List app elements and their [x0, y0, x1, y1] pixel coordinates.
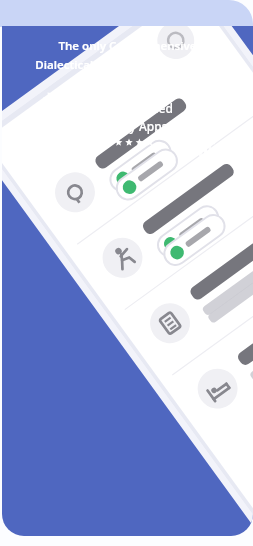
staticText: Evidence Based	[84, 100, 173, 116]
staticText: Dialectical Behavior Therapy App	[35, 57, 220, 73]
button[interactable]: Evidence based DBT app promotion	[2, 26, 253, 536]
staticText: The only Comprehensive	[58, 38, 197, 54]
staticText: Therapy Apps	[89, 118, 168, 134]
